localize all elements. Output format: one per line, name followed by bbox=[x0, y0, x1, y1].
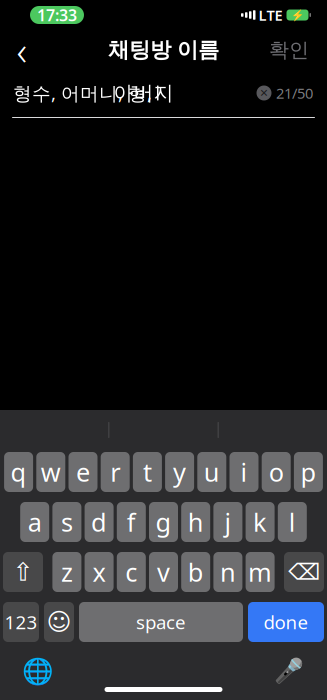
button[interactable]: a bbox=[20, 502, 49, 542]
staticText: s bbox=[61, 505, 73, 539]
staticText: r bbox=[110, 455, 120, 489]
button[interactable]: c bbox=[117, 552, 146, 592]
staticText: n bbox=[220, 555, 236, 589]
staticText: v bbox=[157, 555, 170, 589]
staticText: j bbox=[224, 505, 231, 539]
button[interactable]: m bbox=[246, 552, 275, 592]
staticText: c bbox=[125, 555, 137, 589]
staticText: f bbox=[127, 505, 136, 539]
staticText: a bbox=[28, 505, 42, 539]
button[interactable]: d bbox=[85, 502, 114, 542]
staticText: h bbox=[188, 505, 204, 539]
button[interactable]: r bbox=[101, 452, 130, 492]
button[interactable]: Shift bbox=[3, 552, 43, 592]
button[interactable]: i bbox=[229, 452, 258, 492]
staticText: space bbox=[136, 610, 186, 634]
staticText: 123 bbox=[4, 610, 37, 634]
staticText: 채팅방 이름 bbox=[108, 37, 219, 63]
staticText: z bbox=[61, 555, 73, 589]
button[interactable]: v bbox=[149, 552, 178, 592]
staticText: t bbox=[143, 455, 152, 489]
staticText: u bbox=[204, 455, 220, 489]
staticText: p bbox=[300, 455, 316, 489]
staticText: x bbox=[93, 555, 106, 589]
staticText: 21/50 bbox=[276, 83, 313, 103]
button[interactable]: x bbox=[85, 552, 114, 592]
staticText: y bbox=[173, 455, 186, 489]
staticText: 🎤 bbox=[274, 657, 304, 685]
button[interactable]: g bbox=[149, 502, 178, 542]
staticText: ⚡ bbox=[291, 9, 304, 21]
button[interactable]: f bbox=[117, 502, 146, 542]
staticText: ⇧ bbox=[12, 558, 33, 586]
button[interactable]: o bbox=[262, 452, 291, 492]
staticText: e bbox=[76, 455, 90, 489]
button[interactable]: Clear text bbox=[252, 78, 276, 108]
staticText: q bbox=[11, 455, 27, 489]
staticText: LTE bbox=[258, 5, 282, 25]
staticText: ☺ bbox=[46, 608, 71, 636]
button[interactable]: u bbox=[197, 452, 226, 492]
button[interactable]: e bbox=[68, 452, 97, 492]
button[interactable]: Delete bbox=[284, 552, 324, 592]
staticText: 17:33 bbox=[37, 4, 77, 26]
staticText: g bbox=[155, 505, 171, 539]
button[interactable]: 확인 bbox=[269, 30, 327, 70]
button[interactable]: s bbox=[52, 502, 81, 542]
button[interactable]: w bbox=[36, 452, 65, 492]
button[interactable]: Emoji bbox=[44, 602, 74, 642]
button[interactable]: j bbox=[213, 502, 242, 542]
staticText: b bbox=[188, 555, 204, 589]
staticText: done bbox=[263, 610, 308, 634]
staticText: i bbox=[240, 455, 247, 489]
staticText: w bbox=[41, 455, 61, 489]
staticText: 확인 bbox=[269, 38, 309, 62]
staticText: ‹ bbox=[16, 23, 27, 76]
button[interactable]: space bbox=[79, 602, 243, 642]
staticText: o bbox=[269, 455, 284, 489]
staticText: 아버지 bbox=[113, 81, 173, 105]
button[interactable]: Dictation bbox=[269, 651, 309, 691]
button[interactable]: n bbox=[213, 552, 242, 592]
staticText: ⌫ bbox=[288, 559, 320, 585]
staticText: d bbox=[91, 505, 107, 539]
staticText: m bbox=[248, 555, 272, 589]
button[interactable]: t bbox=[133, 452, 162, 492]
button[interactable]: done bbox=[248, 602, 324, 642]
staticText: l bbox=[289, 505, 296, 539]
button[interactable]: z bbox=[52, 552, 81, 592]
button[interactable]: b bbox=[181, 552, 210, 592]
button[interactable]: y bbox=[165, 452, 194, 492]
staticText: 🌐 bbox=[22, 656, 54, 685]
button[interactable]: Change keyboard bbox=[18, 651, 58, 691]
button[interactable]: q bbox=[4, 452, 33, 492]
button[interactable]: l bbox=[278, 502, 307, 542]
button[interactable]: p bbox=[294, 452, 323, 492]
staticText: k bbox=[253, 505, 267, 539]
button[interactable]: k bbox=[246, 502, 275, 542]
button[interactable]: h bbox=[181, 502, 210, 542]
staticText: ✕ bbox=[259, 87, 268, 99]
staticText: 형수, 어머니, 형, bbox=[13, 81, 157, 105]
button[interactable]: 123 bbox=[3, 602, 39, 642]
button[interactable]: Back bbox=[0, 30, 44, 70]
